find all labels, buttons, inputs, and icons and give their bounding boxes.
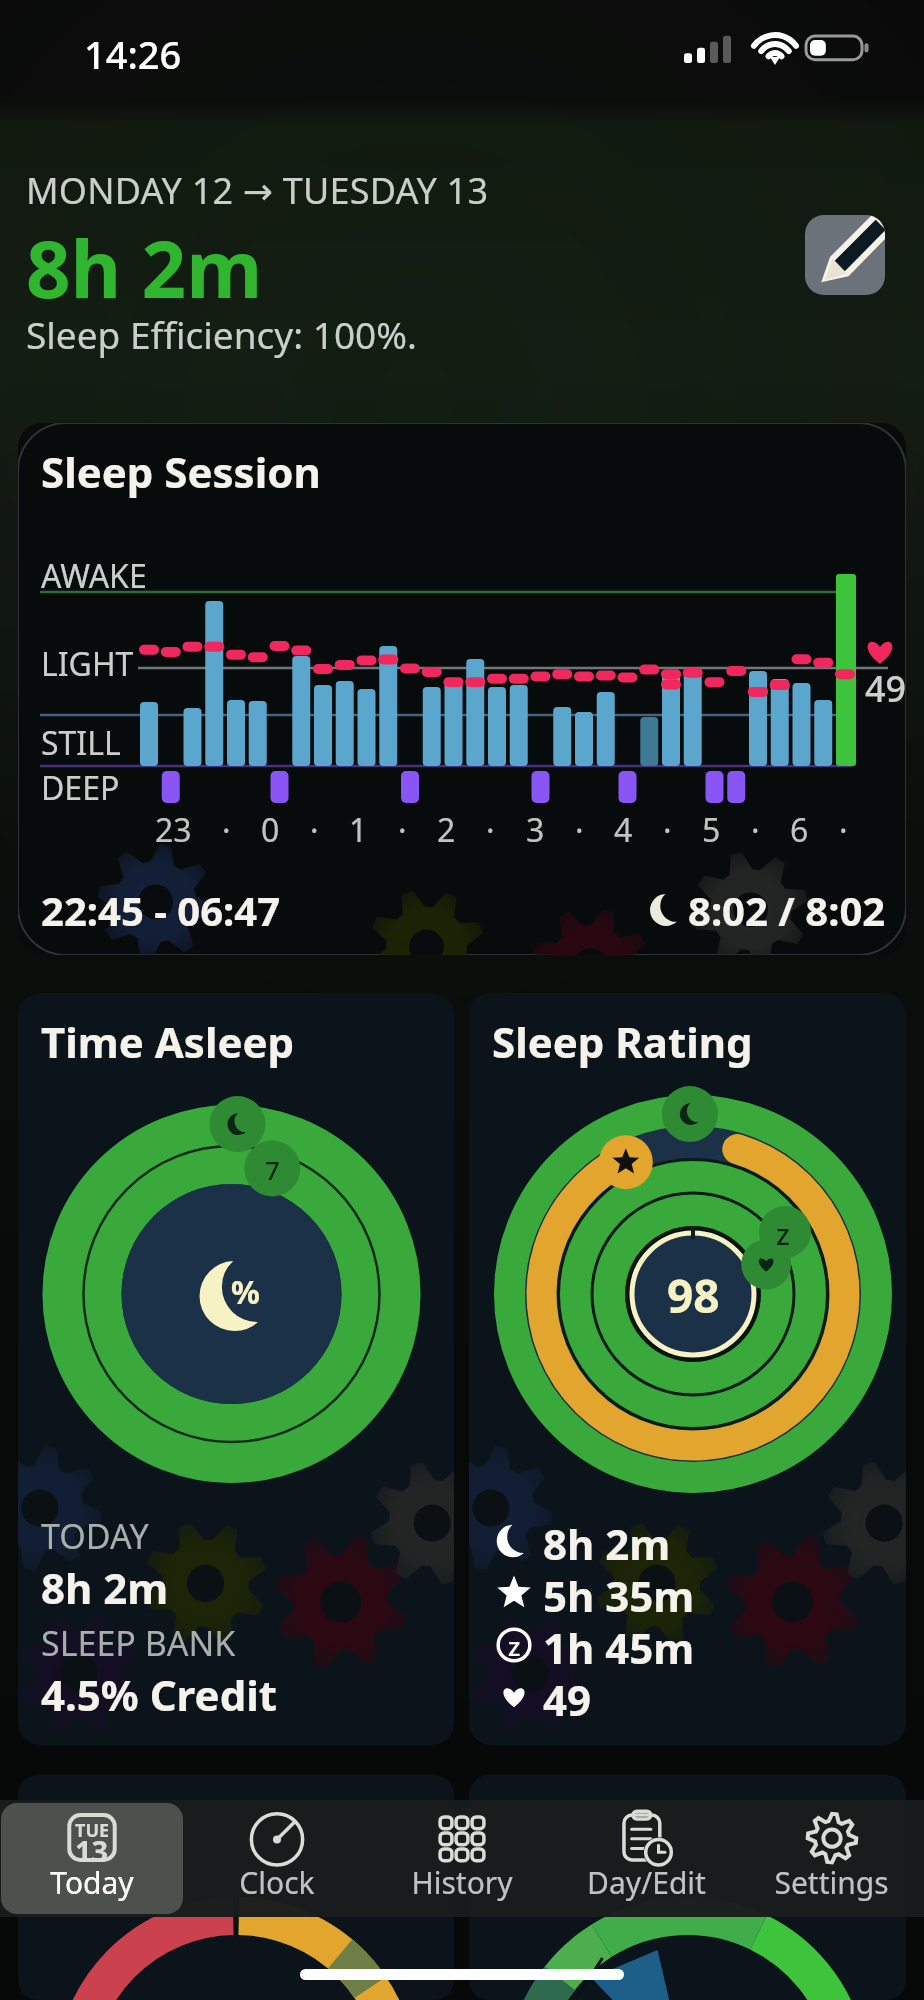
staticText: 13 xyxy=(75,1831,109,1870)
button[interactable] xyxy=(469,1775,906,2000)
staticText: 0 xyxy=(261,808,280,852)
button[interactable]: Sleep Session xyxy=(18,423,906,955)
staticText: 6 xyxy=(790,808,809,852)
button[interactable]: Clock xyxy=(185,1803,368,1914)
staticText: LIGHT xyxy=(41,642,134,686)
staticText: 2 xyxy=(437,808,456,852)
staticText: 8h 2m xyxy=(41,1559,169,1616)
staticText: z xyxy=(776,1214,790,1253)
staticText: DEEP xyxy=(41,766,120,810)
staticText: TUE xyxy=(75,1818,110,1843)
staticText: · xyxy=(663,808,672,852)
staticText: 7 xyxy=(265,1152,280,1187)
staticText: TODAY xyxy=(41,1513,149,1559)
staticText: 3 xyxy=(526,808,545,852)
button[interactable]: TUE xyxy=(1,1803,183,1914)
staticText: 23 xyxy=(155,808,192,852)
staticText: Sleep Efficiency: 100%. xyxy=(26,309,417,359)
button[interactable] xyxy=(18,1775,454,2000)
staticText: z xyxy=(508,1628,521,1663)
staticText: 22:45 - 06:47 xyxy=(41,883,281,937)
button[interactable]: Edit xyxy=(805,215,885,295)
staticText: · xyxy=(398,808,407,852)
staticText: 8h 2m xyxy=(26,215,263,321)
staticText: 49 xyxy=(543,1671,592,1723)
staticText: Clock xyxy=(239,1862,315,1903)
staticText: 1h 45m xyxy=(543,1619,695,1671)
staticText: 8:02 / 8:02 xyxy=(688,883,886,937)
button[interactable]: Sleep Rating xyxy=(469,993,906,1745)
staticText: MONDAY 12 → TUESDAY 13 xyxy=(26,166,489,215)
staticText: 1 xyxy=(349,808,368,852)
staticText: Sleep Rating xyxy=(492,1013,753,1070)
staticText: Settings xyxy=(774,1862,889,1903)
staticText: % xyxy=(231,1270,260,1314)
staticText: · xyxy=(751,808,760,852)
staticText: · xyxy=(310,808,319,852)
staticText: · xyxy=(839,808,848,852)
staticText: · xyxy=(575,808,584,852)
staticText: Today xyxy=(50,1862,134,1903)
staticText: · xyxy=(486,808,495,852)
button[interactable]: Time Asleep xyxy=(18,993,454,1745)
button[interactable]: History xyxy=(370,1803,553,1914)
staticText: 5 xyxy=(702,808,721,852)
staticText: AWAKE xyxy=(41,554,147,598)
staticText: STILL xyxy=(41,721,121,765)
staticText: · xyxy=(222,808,231,852)
staticText: 8h 2m xyxy=(543,1515,671,1567)
button[interactable]: Settings xyxy=(740,1803,923,1914)
staticText: Sleep Session xyxy=(41,443,321,500)
staticText: 5h 35m xyxy=(543,1567,695,1619)
staticText: 14:26 xyxy=(84,28,182,80)
staticText: 98 xyxy=(667,1264,720,1327)
button[interactable]: Day/Edit xyxy=(555,1803,738,1914)
staticText: 4.5% Credit xyxy=(41,1666,277,1723)
staticText: 49 xyxy=(865,664,906,713)
staticText: SLEEP BANK xyxy=(41,1620,236,1666)
staticText: Time Asleep xyxy=(41,1013,295,1070)
staticText: Day/Edit xyxy=(587,1862,706,1903)
staticText: 4 xyxy=(614,808,633,852)
staticText: History xyxy=(411,1862,513,1903)
